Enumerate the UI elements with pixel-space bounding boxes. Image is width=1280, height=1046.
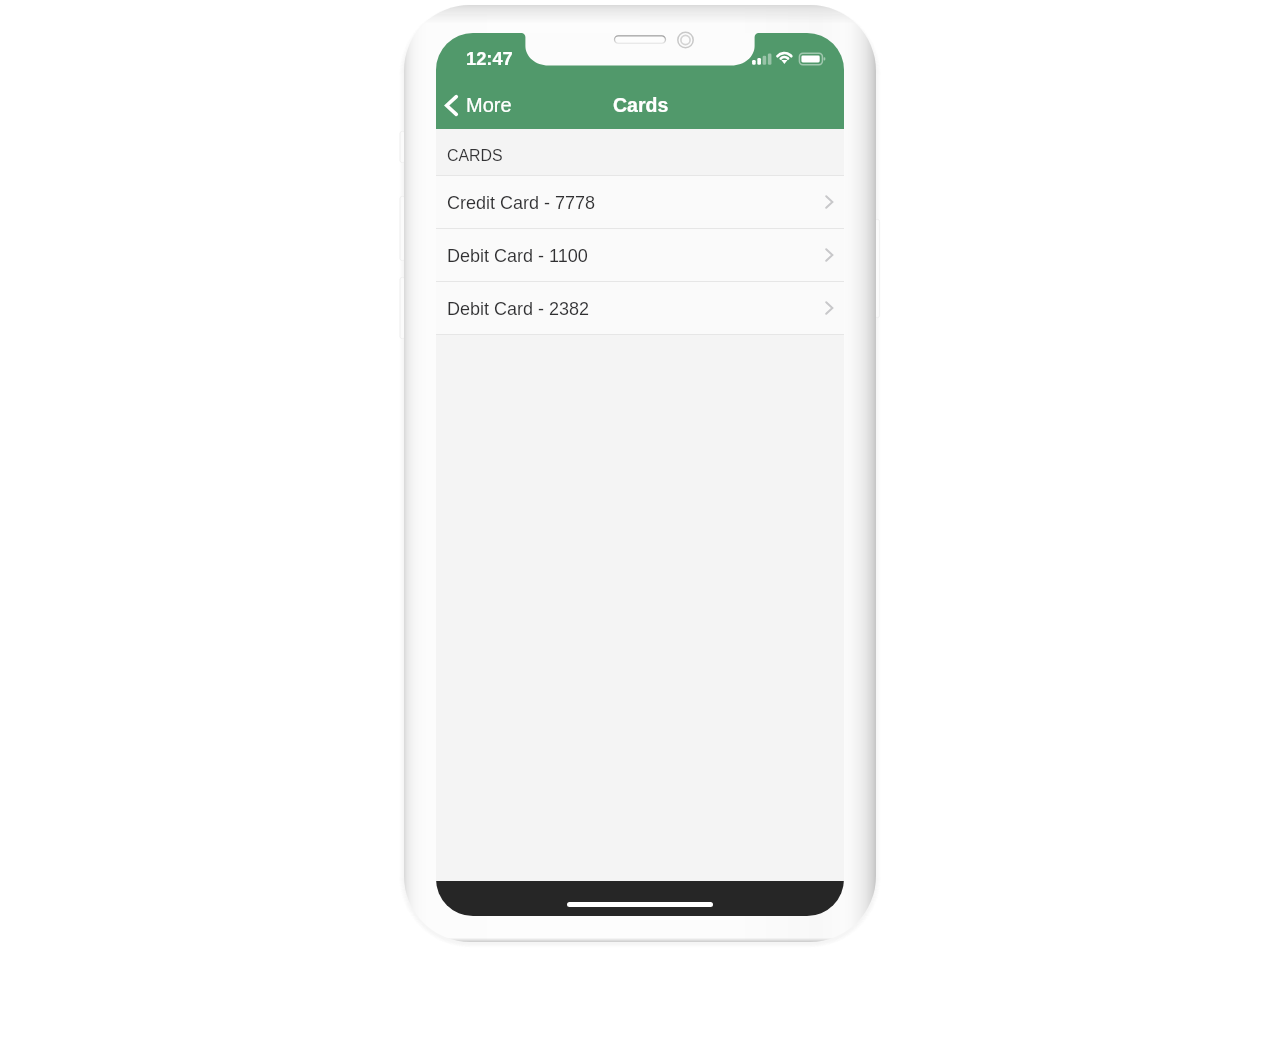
other: Back <box>445 95 458 116</box>
staticText: CARDS <box>447 147 503 165</box>
button[interactable]: Debit Card - 2382 <box>436 281 844 334</box>
button[interactable]: Debit Card - 1100 <box>436 228 844 281</box>
button[interactable]: Credit Card - 7778 <box>436 175 844 228</box>
button[interactable]: Back <box>436 88 522 122</box>
staticText: Credit Card - 7778 <box>447 193 596 213</box>
staticText: Debit Card - 2382 <box>447 299 590 319</box>
staticText: Debit Card - 1100 <box>447 246 588 266</box>
staticText: More <box>466 94 512 116</box>
staticText: Cards <box>613 94 669 116</box>
staticText: 12:47 <box>466 48 513 68</box>
